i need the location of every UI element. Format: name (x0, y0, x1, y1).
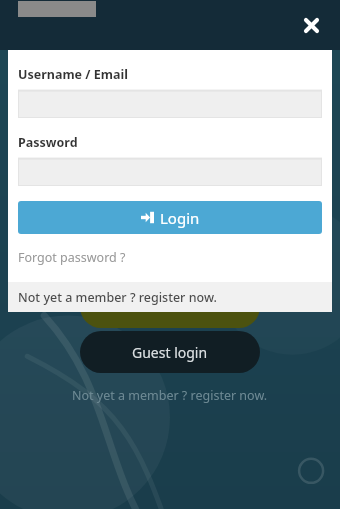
button[interactable]: Close (294, 8, 328, 42)
button[interactable]: Login (18, 201, 322, 234)
staticText: Not yet a member ? register now. (72, 387, 268, 404)
staticText: Password (18, 134, 78, 151)
button[interactable] (80, 286, 260, 328)
button[interactable]: Not yet a member ? register now. (8, 282, 332, 312)
button[interactable] (18, 90, 322, 118)
staticText: Forgot password ? (18, 249, 126, 266)
button[interactable]: Not yet a member ? register now. (64, 385, 276, 406)
button[interactable]: Forgot password ? (18, 247, 126, 268)
staticText: Login (160, 208, 200, 228)
staticText: Username / Email (18, 66, 128, 83)
staticText: Guest login (132, 343, 208, 362)
button[interactable] (18, 158, 322, 186)
button[interactable]: Guest login (80, 331, 260, 373)
staticText: Not yet a member ? register now. (18, 289, 217, 306)
